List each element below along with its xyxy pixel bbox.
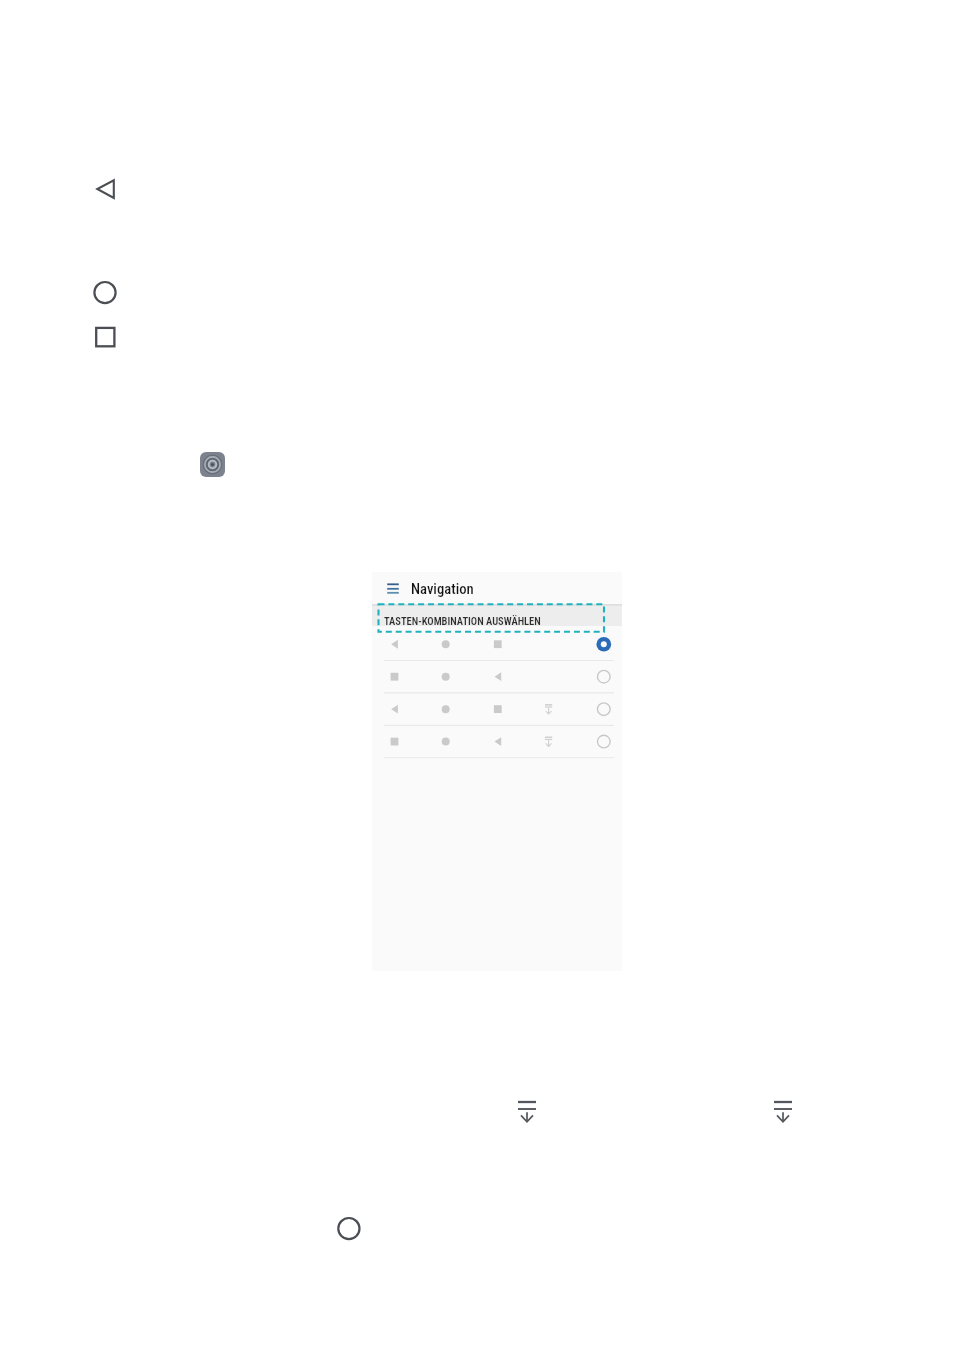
- button[interactable]: Menu: [386, 582, 400, 594]
- button[interactable]: [372, 660, 622, 692]
- button[interactable]: Home key: [336, 1216, 362, 1242]
- button[interactable]: [372, 628, 622, 660]
- staticText: TASTEN-KOMBINATION AUSWÄHLEN: [384, 615, 541, 627]
- button[interactable]: Recents key: [91, 324, 119, 352]
- button[interactable]: Navigation dock button: [200, 452, 225, 477]
- staticText: Navigation: [411, 580, 474, 597]
- button[interactable]: [372, 692, 622, 724]
- button[interactable]: Open notification panel: [769, 1096, 797, 1124]
- button[interactable]: Home key: [91, 278, 120, 307]
- button[interactable]: Back key: [91, 174, 121, 204]
- button[interactable]: Open notification panel: [513, 1096, 541, 1124]
- button[interactable]: [372, 724, 622, 756]
